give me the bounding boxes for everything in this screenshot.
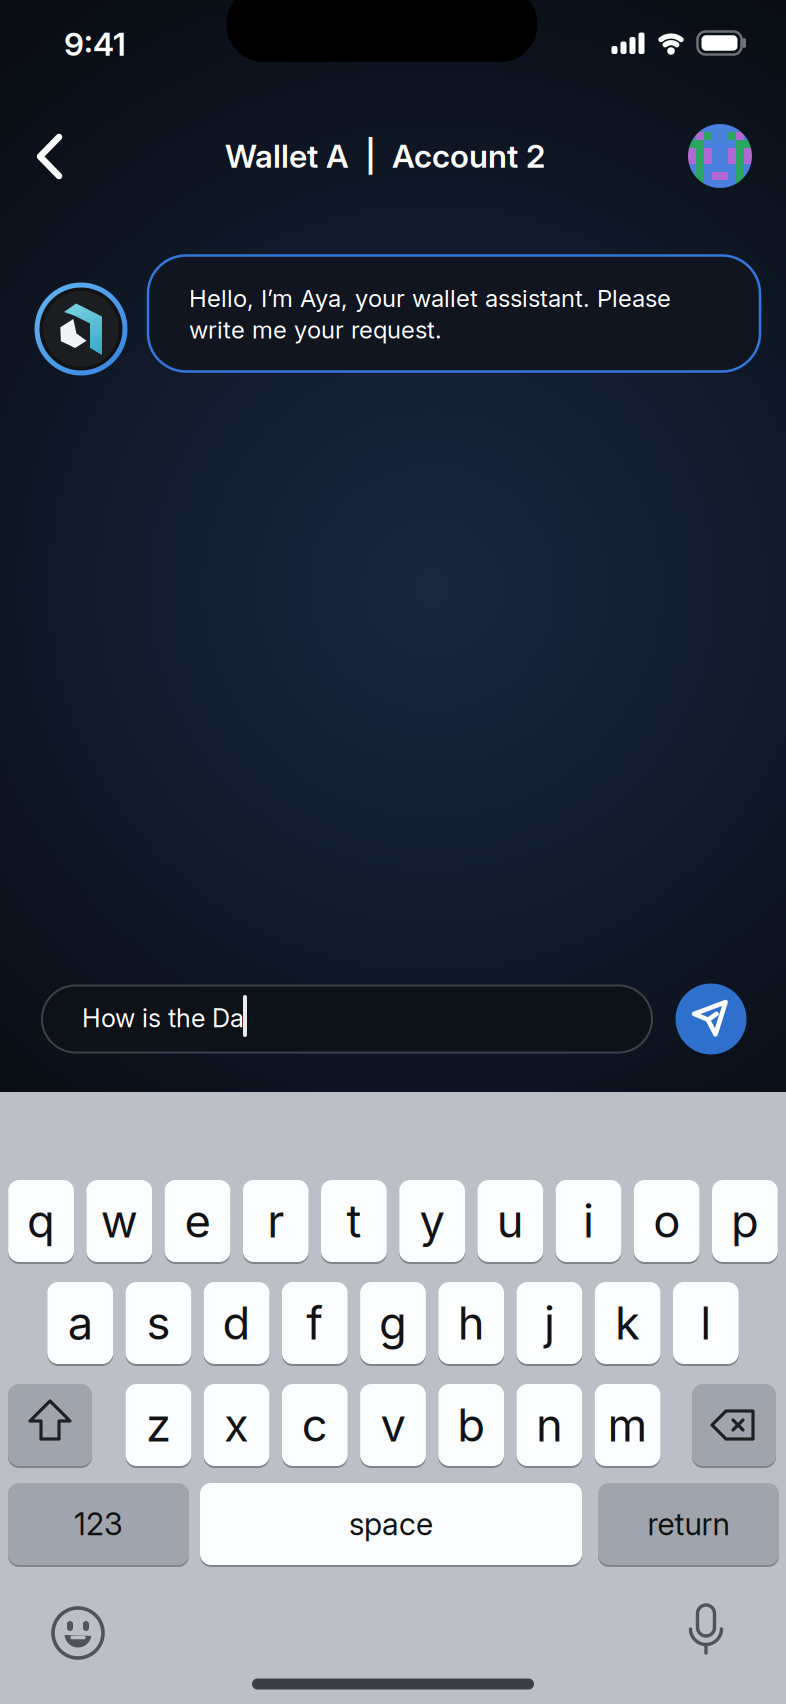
button[interactable]: z: [125, 1383, 191, 1467]
button[interactable]: r: [243, 1179, 309, 1263]
button[interactable]: w: [86, 1179, 152, 1263]
button[interactable]: [684, 1603, 728, 1659]
button[interactable]: c: [282, 1383, 348, 1467]
staticText: v: [380, 1398, 405, 1452]
button[interactable]: m: [595, 1383, 660, 1467]
staticText: Hello, I’m Aya, your wallet assistant. P…: [189, 284, 671, 344]
staticText: t: [346, 1194, 361, 1248]
button[interactable]: 123: [8, 1482, 189, 1566]
button[interactable]: [42, 985, 652, 1052]
staticText: c: [302, 1398, 328, 1452]
button[interactable]: return: [598, 1482, 779, 1566]
staticText: a: [68, 1296, 93, 1350]
button[interactable]: f: [282, 1281, 348, 1365]
staticText: l: [700, 1296, 711, 1350]
staticText: return: [647, 1506, 729, 1542]
button[interactable]: p: [712, 1179, 778, 1263]
staticText: u: [497, 1194, 524, 1248]
staticText: n: [536, 1398, 563, 1452]
staticText: k: [615, 1296, 640, 1350]
staticText: b: [457, 1398, 485, 1452]
staticText: f: [306, 1296, 323, 1350]
button[interactable]: h: [438, 1281, 504, 1365]
button[interactable]: [688, 124, 752, 188]
button[interactable]: k: [595, 1281, 660, 1365]
staticText: x: [224, 1398, 249, 1452]
staticText: space: [349, 1506, 433, 1542]
button[interactable]: b: [438, 1383, 504, 1467]
staticText: y: [420, 1194, 445, 1248]
button[interactable]: space: [200, 1482, 582, 1566]
staticText: z: [146, 1398, 171, 1452]
button[interactable]: s: [125, 1281, 191, 1365]
button[interactable]: x: [204, 1383, 269, 1467]
button[interactable]: a: [47, 1281, 113, 1365]
staticText: m: [608, 1398, 648, 1452]
staticText: p: [731, 1194, 759, 1248]
staticText: r: [267, 1194, 284, 1248]
staticText: o: [653, 1194, 680, 1248]
staticText: j: [544, 1296, 555, 1350]
staticText: w: [101, 1194, 138, 1248]
button[interactable]: l: [673, 1281, 739, 1365]
button[interactable]: t: [321, 1179, 387, 1263]
button[interactable]: [675, 983, 746, 1054]
button[interactable]: [692, 1383, 776, 1467]
button[interactable]: [30, 126, 70, 186]
staticText: h: [458, 1296, 485, 1350]
button[interactable]: [50, 1605, 106, 1661]
staticText: 123: [74, 1506, 123, 1542]
button[interactable]: j: [516, 1281, 582, 1365]
button[interactable]: i: [556, 1179, 621, 1263]
button[interactable]: y: [399, 1179, 465, 1263]
button[interactable]: g: [360, 1281, 426, 1365]
staticText: Wallet A | Account 2: [225, 137, 545, 175]
button[interactable]: d: [204, 1281, 269, 1365]
button[interactable]: [8, 1383, 92, 1467]
staticText: i: [583, 1194, 594, 1248]
staticText: s: [146, 1296, 170, 1350]
button[interactable]: e: [165, 1179, 230, 1263]
staticText: e: [184, 1194, 210, 1248]
staticText: g: [379, 1296, 407, 1350]
button[interactable]: o: [634, 1179, 700, 1263]
staticText: How is the Da: [82, 1003, 244, 1033]
button[interactable]: v: [360, 1383, 426, 1467]
button[interactable]: u: [477, 1179, 543, 1263]
button[interactable]: n: [516, 1383, 582, 1467]
button[interactable]: q: [8, 1179, 74, 1263]
staticText: d: [223, 1296, 251, 1350]
staticText: q: [27, 1194, 55, 1248]
staticText: 9:41: [64, 25, 126, 63]
